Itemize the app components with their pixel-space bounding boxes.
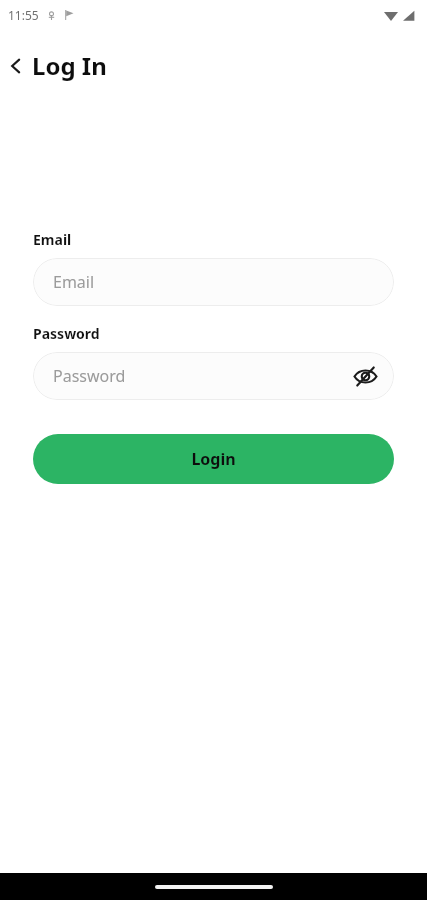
- staticText: Log In: [32, 49, 107, 82]
- staticText: Password: [33, 324, 100, 343]
- staticText: 11:55: [8, 7, 39, 23]
- staticText: Login: [191, 448, 236, 470]
- staticText: Email: [33, 230, 72, 249]
- staticText: Password: [53, 365, 126, 387]
- button[interactable]: Login: [33, 434, 394, 484]
- button[interactable]: Email: [33, 258, 394, 306]
- button[interactable]: Password: [33, 352, 394, 400]
- staticText: Email: [53, 271, 95, 293]
- button[interactable]: Show password: [348, 359, 382, 393]
- button[interactable]: Back: [0, 50, 32, 82]
